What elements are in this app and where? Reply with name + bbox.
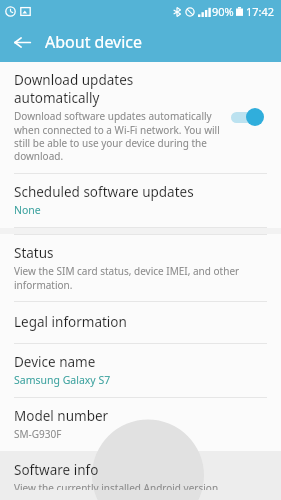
staticText: Legal information [14, 313, 127, 331]
staticText: Software info [14, 461, 99, 479]
button[interactable]: Status [0, 235, 281, 301]
button[interactable]: Scheduled software updates [0, 174, 281, 227]
staticText: View the SIM card status, device IMEI, a… [14, 264, 269, 292]
staticText: SM-G930F [14, 427, 62, 441]
button[interactable]: Back [5, 25, 39, 59]
staticText: About device [45, 31, 143, 53]
button[interactable]: Download updates automatically [0, 62, 281, 173]
button[interactable]: Software info [0, 451, 281, 500]
button[interactable]: Legal information [0, 302, 281, 343]
staticText: Download software updates automatically … [14, 109, 221, 163]
staticText: Model number [14, 407, 109, 425]
staticText: View the currently installed Android ver… [14, 481, 269, 490]
button[interactable]: Device name [0, 344, 281, 397]
staticText: Scheduled software updates [14, 183, 194, 201]
staticText: 90% [212, 4, 234, 19]
staticText: 17:42 [246, 4, 275, 19]
staticText: Samsung Galaxy S7 [14, 373, 111, 387]
button[interactable]: Download updates automatically [227, 104, 271, 130]
staticText: None [14, 203, 41, 217]
staticText: Status [14, 244, 54, 262]
staticText: Device name [14, 353, 96, 371]
staticText: Download updates automatically [14, 71, 221, 107]
button[interactable]: Model number [0, 398, 281, 451]
